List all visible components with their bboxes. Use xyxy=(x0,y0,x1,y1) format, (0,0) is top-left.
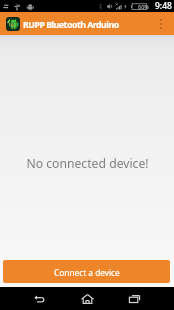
button[interactable]: Home xyxy=(64,287,110,310)
staticText: 9:48 xyxy=(155,0,172,12)
staticText: No connected device! xyxy=(26,155,149,172)
button[interactable]: Recents xyxy=(111,287,157,310)
staticText: RUPP Bluetooth Arduino xyxy=(23,19,119,31)
button[interactable]: Connect a device xyxy=(3,260,170,283)
button[interactable]: Back xyxy=(16,287,62,310)
staticText: 60% xyxy=(138,3,149,10)
button[interactable]: More options xyxy=(151,12,171,35)
staticText: Connect a device xyxy=(54,267,120,278)
